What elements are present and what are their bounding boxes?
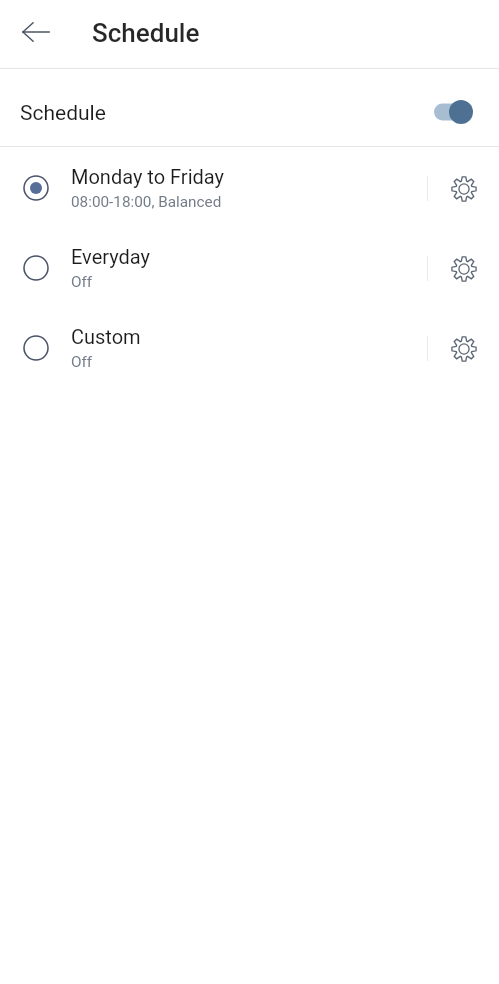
button[interactable]: Custom bbox=[0, 307, 499, 387]
staticText: Monday to Friday bbox=[71, 165, 224, 188]
staticText: Off bbox=[71, 273, 93, 291]
button[interactable]: Settings bbox=[442, 247, 485, 290]
button[interactable]: Settings bbox=[442, 327, 485, 370]
staticText: 08:00-18:00, Balanced bbox=[71, 193, 222, 211]
button[interactable]: Everyday bbox=[0, 227, 499, 307]
button[interactable]: Schedule toggle bbox=[434, 96, 480, 128]
staticText: Off bbox=[71, 353, 93, 371]
staticText: Schedule bbox=[92, 18, 200, 48]
staticText: Custom bbox=[71, 325, 141, 348]
button[interactable]: Monday to Friday bbox=[0, 147, 499, 227]
button[interactable]: Settings bbox=[442, 167, 485, 210]
staticText: Everyday bbox=[71, 245, 151, 268]
button[interactable]: Schedule bbox=[0, 69, 499, 146]
staticText: Schedule bbox=[20, 101, 106, 126]
button[interactable]: Back bbox=[15, 11, 57, 53]
